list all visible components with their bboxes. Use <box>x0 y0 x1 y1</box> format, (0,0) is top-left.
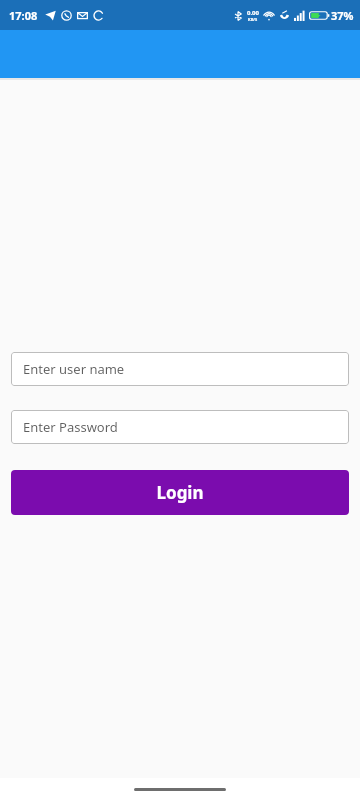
staticText: Enter Password <box>23 418 118 436</box>
button[interactable]: Login <box>11 470 349 515</box>
button[interactable]: Enter user name <box>11 352 349 386</box>
staticText: KB/S <box>248 17 258 22</box>
staticText: 0.00 <box>247 9 259 17</box>
staticText: Enter user name <box>23 360 125 378</box>
staticText: Login <box>156 481 204 504</box>
staticText: 37% <box>331 8 354 23</box>
button[interactable]: Enter Password <box>11 410 349 444</box>
staticText: 17:08 <box>9 8 38 23</box>
